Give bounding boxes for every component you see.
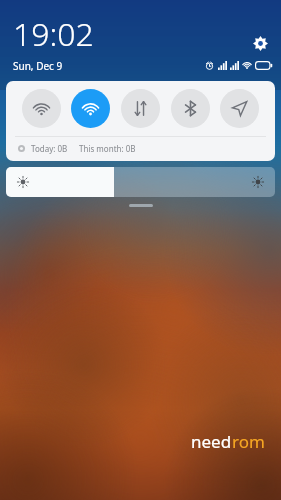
button[interactable]: Mobile data bbox=[121, 89, 160, 128]
staticText: This month: 0B bbox=[79, 143, 136, 154]
button[interactable]: Settings bbox=[248, 31, 272, 55]
button[interactable]: Wi-Fi bbox=[71, 89, 110, 128]
staticText: Today: 0B bbox=[31, 143, 68, 154]
button[interactable]: Location bbox=[220, 89, 259, 128]
button[interactable]: Today: 0B bbox=[6, 137, 275, 161]
button[interactable]: Brightness bbox=[6, 167, 275, 197]
staticText: 19:02 bbox=[13, 12, 94, 56]
button[interactable]: Hotspot bbox=[22, 89, 61, 128]
button[interactable]: Bluetooth bbox=[171, 89, 210, 128]
button[interactable]: Collapse bbox=[129, 204, 153, 207]
staticText: need bbox=[191, 430, 232, 453]
staticText: Sun, Dec 9 bbox=[13, 59, 63, 73]
staticText: rom bbox=[232, 430, 265, 453]
